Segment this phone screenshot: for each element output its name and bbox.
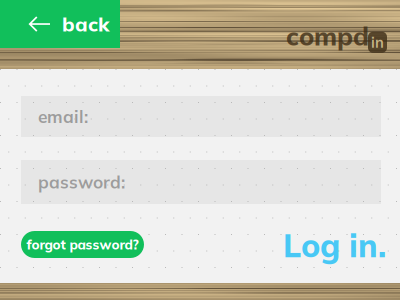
- button[interactable]: password:: [21, 160, 381, 204]
- button[interactable]: forgot password?: [21, 231, 144, 258]
- button[interactable]: email:: [21, 96, 381, 137]
- button[interactable]: back: [0, 0, 120, 48]
- button[interactable]: Log in.: [283, 225, 386, 265]
- staticText: in: [371, 33, 384, 51]
- staticText: back: [62, 11, 109, 37]
- staticText: password:: [38, 171, 125, 193]
- staticText: email:: [38, 106, 88, 127]
- staticText: compd: [286, 20, 369, 52]
- staticText: Log in.: [283, 225, 386, 265]
- staticText: forgot password?: [26, 236, 138, 253]
